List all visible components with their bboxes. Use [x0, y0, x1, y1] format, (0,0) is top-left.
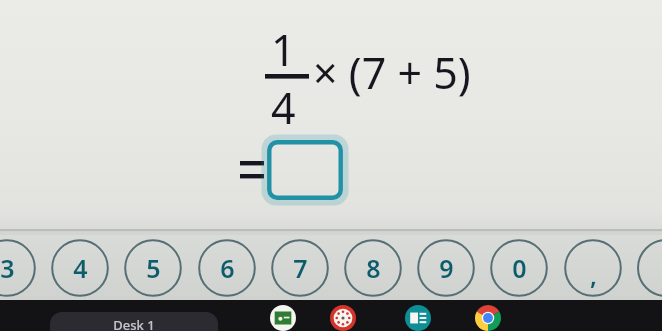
staticText: 8 [366, 251, 381, 285]
button[interactable]: 9 [417, 239, 475, 297]
staticText: 6 [220, 251, 235, 285]
staticText: × (7 + 5) [313, 43, 471, 102]
staticText: 9 [439, 251, 454, 285]
button[interactable]: 4 [51, 239, 109, 297]
staticText: 0 [512, 251, 527, 285]
button[interactable]: Desk 1 [50, 312, 218, 331]
button[interactable]: 6 [198, 239, 256, 297]
button[interactable]: Classroom [270, 305, 296, 331]
button[interactable]: 8 [344, 239, 402, 297]
staticText: 3 [0, 251, 15, 285]
button[interactable]: 7 [271, 239, 329, 297]
button[interactable]: Clock [330, 305, 356, 331]
button[interactable]: 3 [0, 239, 36, 297]
staticText: , [590, 258, 597, 292]
button[interactable]: 5 [124, 239, 182, 297]
staticText: 5 [146, 251, 161, 285]
button[interactable]: , [564, 239, 622, 297]
staticText: 4 [73, 251, 88, 285]
button[interactable]: 0 [490, 239, 548, 297]
staticText: Desk 1 [113, 316, 155, 331]
button[interactable]: News [405, 305, 431, 331]
staticText: 1 [271, 20, 296, 79]
button[interactable]: More keys [637, 239, 662, 297]
button[interactable]: Answer input box [267, 140, 343, 200]
staticText: 4 [271, 78, 296, 137]
button[interactable]: Chrome [475, 305, 501, 331]
staticText: 7 [293, 251, 308, 285]
